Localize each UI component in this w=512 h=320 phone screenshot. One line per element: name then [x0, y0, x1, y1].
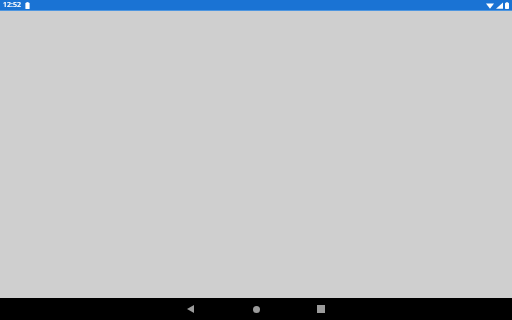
- staticText: 12:52: [3, 0, 21, 10]
- button[interactable]: Back: [170, 298, 210, 320]
- button[interactable]: Home: [236, 298, 276, 320]
- button[interactable]: Recent apps: [301, 298, 341, 320]
